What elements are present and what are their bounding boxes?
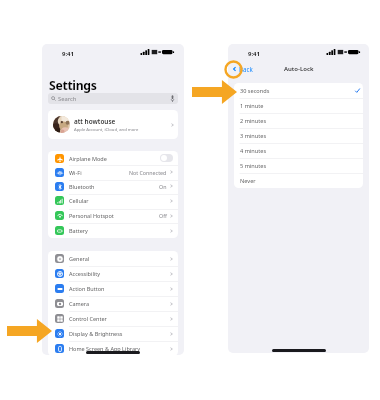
staticText: Settings [49, 77, 97, 94]
button[interactable]: 1 minute [234, 98, 363, 113]
staticText: att howtouse [74, 117, 116, 126]
button[interactable]: Bluetooth [48, 179, 178, 193]
staticText: Wi-Fi [69, 169, 82, 176]
button[interactable]: Accessibility [48, 266, 178, 281]
button[interactable]: 5 minutes [234, 158, 363, 173]
staticText: 2 minutes [240, 117, 267, 125]
staticText: Airplane Mode [69, 155, 107, 162]
staticText: Apple Account, iCloud, and more [74, 127, 139, 133]
staticText: Search [58, 95, 77, 103]
staticText: Camera [69, 300, 90, 307]
staticText: On [159, 183, 167, 190]
staticText: 5 minutes [240, 162, 267, 170]
button[interactable]: Battery [48, 223, 178, 238]
button[interactable]: Airplane Mode [48, 151, 178, 165]
button[interactable]: Never [234, 173, 363, 188]
staticText: 30 seconds [240, 87, 270, 95]
button[interactable]: Wi-Fi [48, 165, 178, 179]
staticText: Auto-Lock [284, 65, 314, 73]
button[interactable]: Control Center [48, 311, 178, 326]
staticText: Action Button [69, 285, 105, 292]
staticText: Never [240, 177, 256, 185]
staticText: Bluetooth [69, 183, 95, 190]
button[interactable]: Back [228, 65, 255, 73]
staticText: Personal Hotspot [69, 212, 114, 219]
staticText: Off [159, 212, 167, 219]
staticText: Not Connected [129, 169, 167, 176]
staticText: 9:41 [62, 50, 74, 58]
staticText: Battery [69, 227, 88, 234]
button[interactable]: Action Button [48, 281, 178, 296]
button[interactable]: Personal Hotspot [48, 208, 178, 223]
button[interactable]: Camera [48, 296, 178, 311]
staticText: Back [239, 65, 253, 73]
staticText: General [69, 255, 90, 262]
staticText: 1 minute [240, 102, 264, 110]
button[interactable]: Home Screen & App Library [48, 341, 178, 355]
staticText: 9:41 [248, 50, 260, 58]
button[interactable]: 3 minutes [234, 128, 363, 143]
staticText: Cellular [69, 197, 89, 204]
button[interactable]: Cellular [48, 193, 178, 208]
button[interactable]: Search [48, 93, 178, 104]
button[interactable]: Airplane Mode toggle [160, 154, 173, 162]
button[interactable]: 2 minutes [234, 113, 363, 128]
staticText: Accessibility [69, 270, 101, 277]
button[interactable]: General [48, 251, 178, 266]
button[interactable]: 30 seconds [234, 83, 363, 98]
staticText: Control Center [69, 315, 107, 322]
button[interactable]: Display & Brightness [48, 326, 178, 341]
button[interactable]: att howtouse [48, 110, 178, 139]
staticText: Home Screen & App Library [69, 345, 141, 352]
staticText: 4 minutes [240, 147, 267, 155]
staticText: 3 minutes [240, 132, 267, 140]
staticText: Display & Brightness [69, 330, 123, 337]
button[interactable]: 4 minutes [234, 143, 363, 158]
